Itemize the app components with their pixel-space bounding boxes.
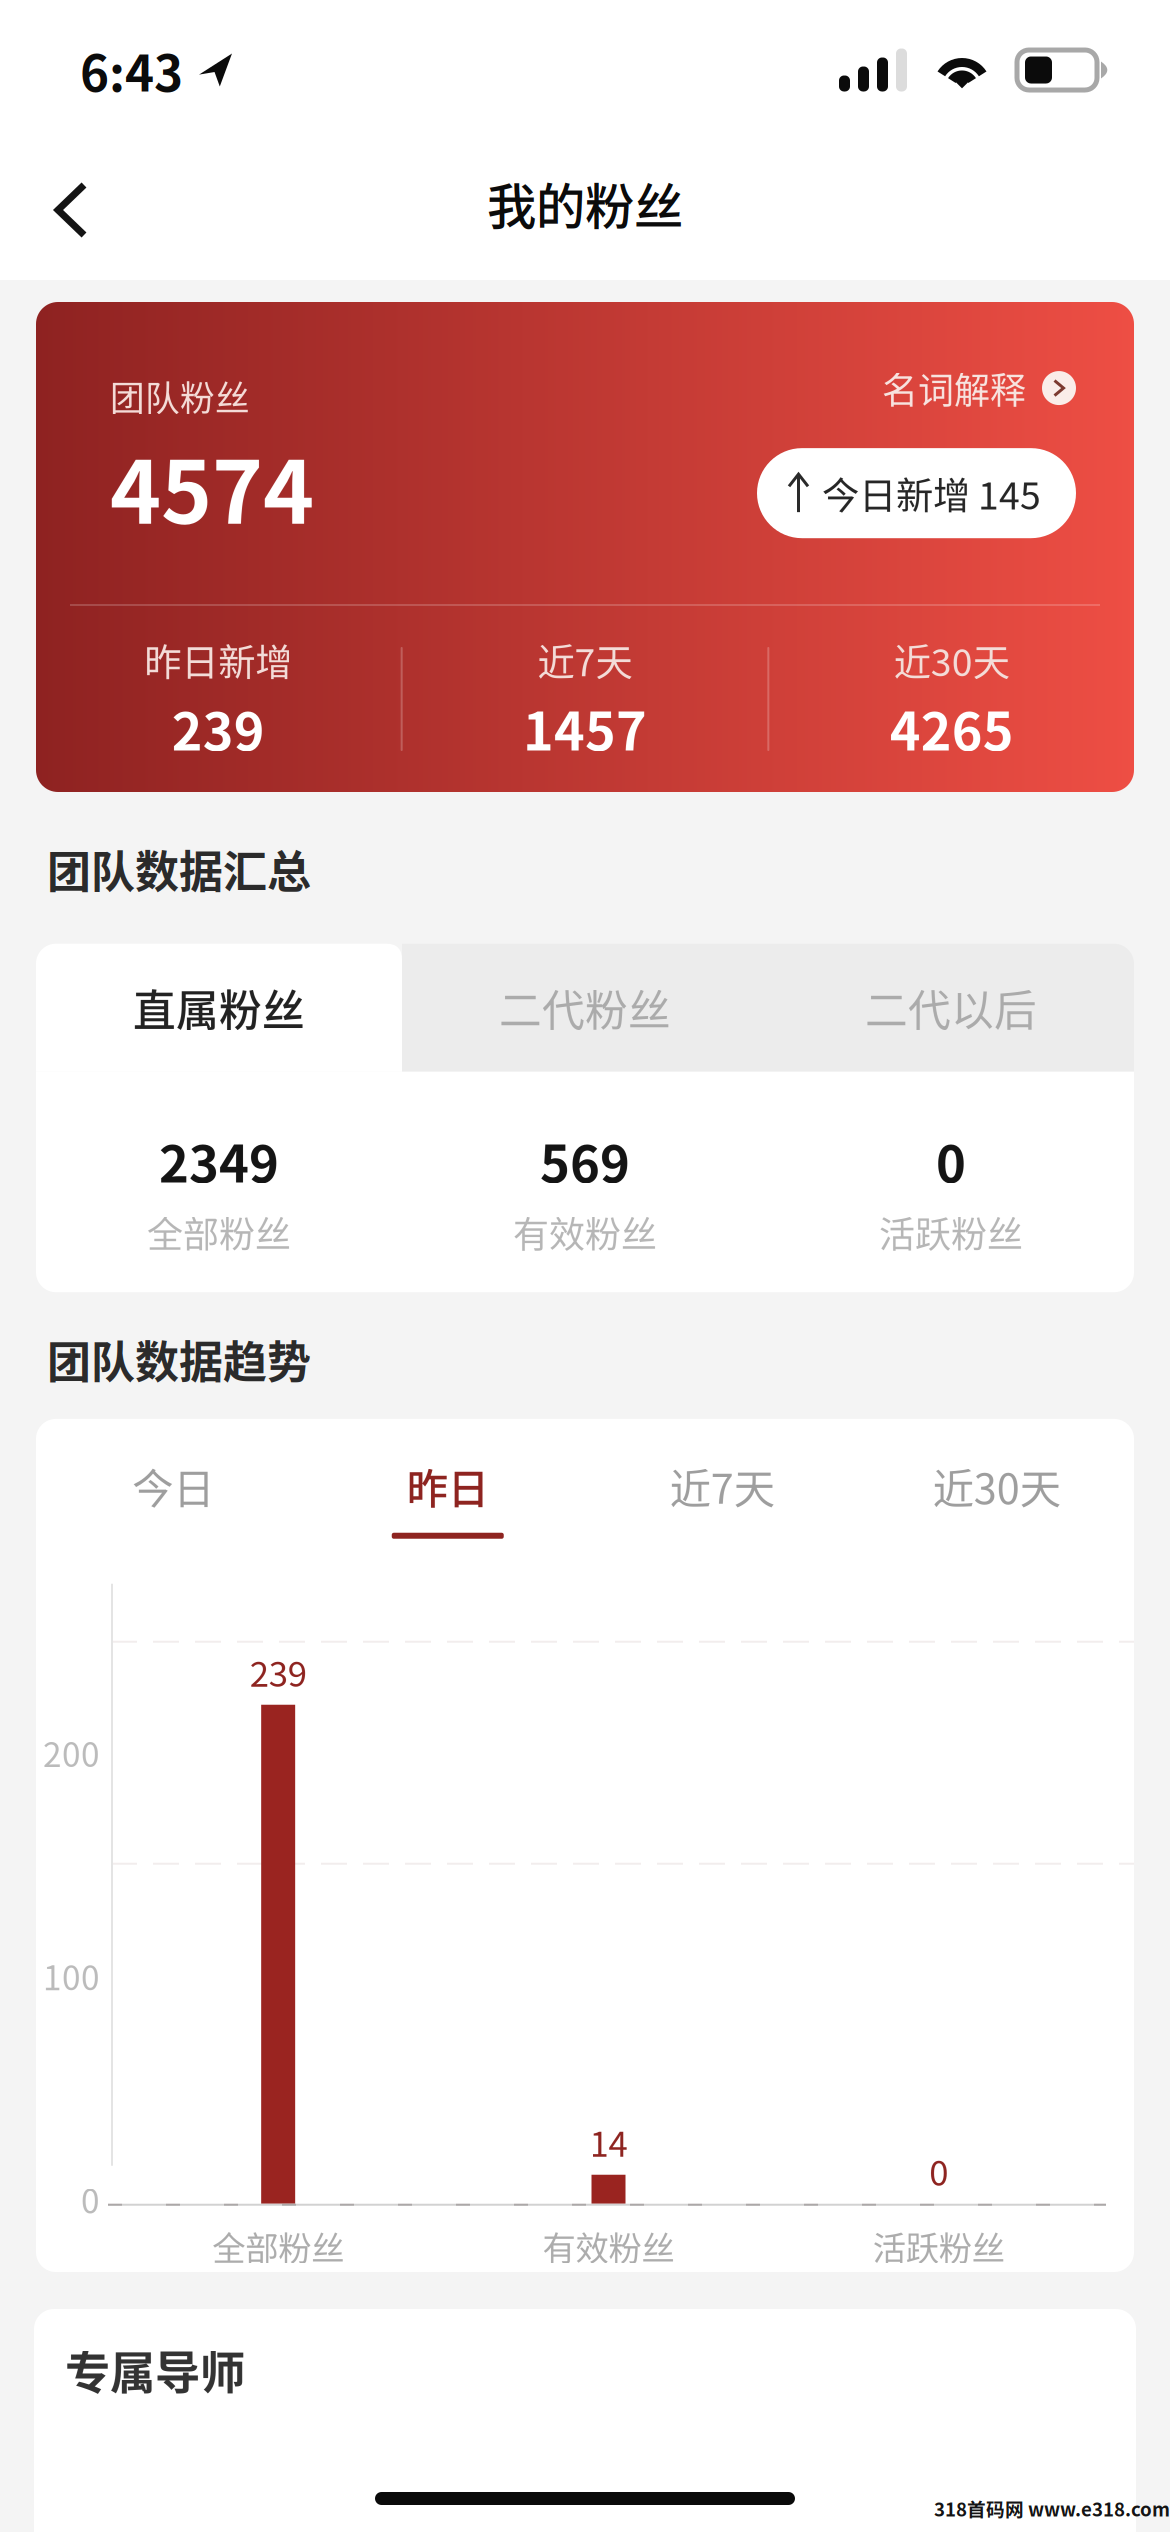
staticText: 239: [250, 1647, 307, 1697]
staticText: 有效粉丝: [513, 1206, 657, 1258]
staticText: 今日: [132, 1456, 214, 1516]
staticText: 100: [43, 1952, 100, 2000]
button[interactable]: 近7天: [585, 1456, 859, 1539]
staticText: 名词解释: [882, 362, 1026, 414]
staticText: 318首码网 www.e318.com: [934, 2495, 1170, 2522]
button[interactable]: 今日新增 145: [757, 448, 1076, 538]
button[interactable]: 二代粉丝: [402, 944, 768, 1072]
button[interactable]: 昨日: [310, 1456, 585, 1539]
staticText: 活跃粉丝: [879, 1206, 1023, 1258]
staticText: 我的粉丝: [487, 167, 683, 239]
staticText: 活跃粉丝: [873, 2222, 1005, 2270]
staticText: 1457: [523, 690, 647, 765]
staticText: 直属粉丝: [133, 977, 305, 1039]
staticText: 6:43: [80, 34, 183, 106]
staticText: 200: [43, 1728, 100, 1777]
staticText: 4574: [110, 423, 314, 549]
staticText: 昨日新增: [144, 633, 292, 687]
button[interactable]: 名词解释: [882, 362, 1076, 414]
staticText: 专属导师: [65, 2337, 245, 2403]
staticText: 有效粉丝: [542, 2222, 674, 2270]
button[interactable]: 近30天: [859, 1456, 1134, 1539]
button[interactable]: 二代以后: [768, 944, 1134, 1072]
staticText: 近30天: [933, 1456, 1061, 1516]
staticText: 2349: [159, 1124, 279, 1197]
staticText: 二代粉丝: [499, 977, 671, 1039]
staticText: 今日新增 145: [822, 466, 1041, 520]
staticText: 团队数据趋势: [47, 1327, 311, 1391]
staticText: 全部粉丝: [212, 2222, 344, 2270]
staticText: 全部粉丝: [147, 1206, 291, 1258]
staticText: 二代以后: [865, 977, 1037, 1039]
staticText: 569: [540, 1124, 630, 1197]
staticText: 近7天: [537, 633, 632, 687]
button[interactable]: 直属粉丝: [36, 944, 402, 1072]
staticText: 0: [81, 2175, 100, 2223]
button[interactable]: Back: [0, 151, 130, 269]
staticText: 近30天: [894, 633, 1010, 687]
staticText: 团队数据汇总: [47, 837, 311, 901]
staticText: 近7天: [670, 1456, 775, 1516]
staticText: 4265: [890, 690, 1014, 765]
staticText: 0: [936, 1124, 966, 1197]
staticText: 昨日: [407, 1456, 489, 1516]
staticText: 团队粉丝: [110, 371, 250, 421]
staticText: 0: [929, 2146, 948, 2196]
staticText: 14: [589, 2117, 627, 2167]
button[interactable]: 今日: [36, 1456, 310, 1539]
staticText: 239: [172, 690, 265, 765]
